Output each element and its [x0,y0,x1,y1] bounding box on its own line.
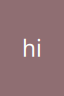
staticText: hi [22,33,42,63]
